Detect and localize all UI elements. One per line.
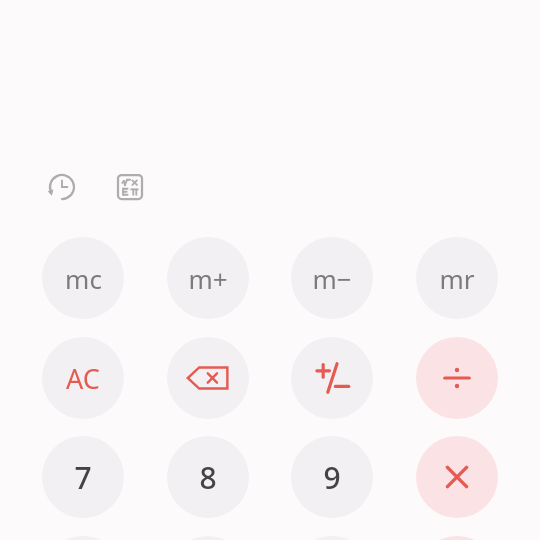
button[interactable]: 4 (42, 536, 124, 540)
button[interactable]: 6 (291, 536, 373, 540)
button[interactable]: 5 (167, 536, 249, 540)
button[interactable]: 9 (291, 436, 373, 518)
button[interactable]: Plus minus (291, 337, 373, 419)
staticText: mc (65, 261, 102, 296)
staticText: m+ (188, 261, 228, 296)
staticText: mr (439, 261, 475, 296)
button[interactable]: Scientific functions (115, 172, 145, 202)
button[interactable]: 7 (42, 436, 124, 518)
staticText: m− (312, 261, 352, 296)
button[interactable]: Multiply (416, 436, 498, 518)
button[interactable]: Backspace (167, 337, 249, 419)
staticText: 9 (323, 457, 341, 498)
button[interactable]: History (47, 172, 77, 202)
staticText: AC (66, 360, 100, 397)
button[interactable]: mr (416, 237, 498, 319)
button[interactable]: AC (42, 337, 124, 419)
button[interactable]: 8 (167, 436, 249, 518)
button[interactable]: m− (291, 237, 373, 319)
staticText: 8 (199, 457, 217, 498)
staticText: 7 (74, 457, 92, 498)
button[interactable]: Divide (416, 337, 498, 419)
button[interactable]: Subtract (416, 536, 498, 540)
button[interactable]: m+ (167, 237, 249, 319)
button[interactable]: mc (42, 237, 124, 319)
